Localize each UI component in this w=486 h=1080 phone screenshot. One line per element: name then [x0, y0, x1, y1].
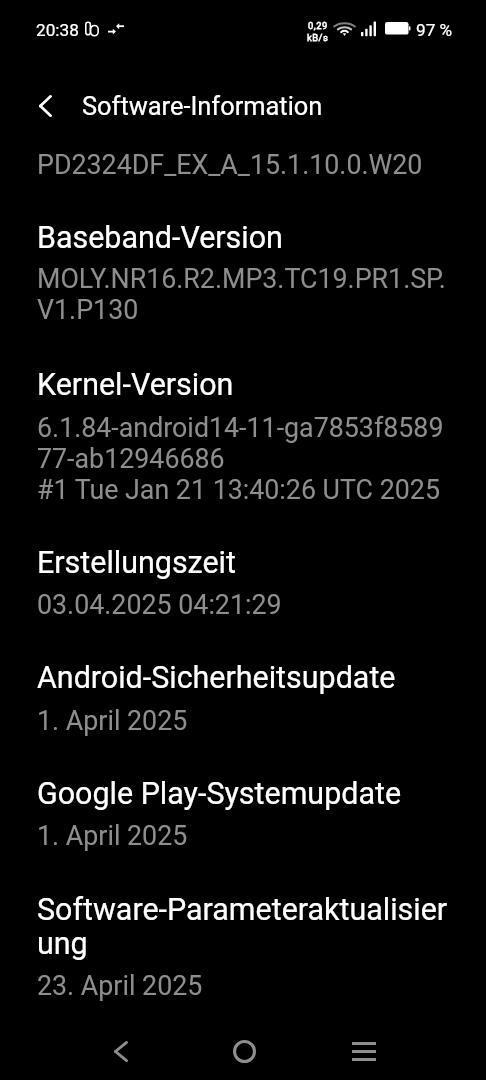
staticText: kB/s	[307, 32, 329, 43]
staticText: 6.1.84-android14-11-ga7853f8589 77-ab129…	[37, 412, 444, 505]
button[interactable]	[0, 205, 486, 342]
button[interactable]: Recent apps	[330, 1029, 398, 1073]
button[interactable]	[0, 645, 486, 752]
button[interactable]	[0, 352, 486, 522]
button[interactable]	[0, 530, 486, 637]
staticText: 0,29	[308, 20, 328, 31]
staticText: PD2324DF_EX_A_15.1.10.0.W20	[37, 149, 423, 180]
staticText: 1. April 2025	[37, 705, 188, 736]
staticText: MOLY.NR16.R2.MP3.TC19.PR1.SP. V1.P130	[37, 263, 446, 325]
staticText: 23. April 2025	[37, 970, 203, 1001]
staticText: 03.04.2025 04:21:29	[37, 589, 282, 620]
button[interactable]	[0, 877, 486, 1018]
staticText: 20:38	[36, 20, 79, 40]
button[interactable]: Home	[210, 1029, 278, 1073]
staticText: Android-Sicherheitsupdate	[37, 660, 396, 696]
staticText: Baseband-Version	[37, 220, 283, 256]
staticText: Kernel-Version	[37, 367, 234, 403]
button[interactable]: Back	[87, 1029, 155, 1073]
button[interactable]	[0, 135, 486, 197]
staticText: Software-Parameteraktualisier ung	[37, 892, 448, 961]
staticText: 97 %	[416, 20, 453, 40]
button[interactable]: Back	[17, 78, 73, 134]
button[interactable]	[0, 761, 486, 868]
staticText: Google Play-Systemupdate	[37, 776, 402, 812]
staticText: 1. April 2025	[37, 820, 188, 851]
staticText: Software-Information	[82, 91, 323, 121]
staticText: Erstellungszeit	[37, 545, 236, 581]
